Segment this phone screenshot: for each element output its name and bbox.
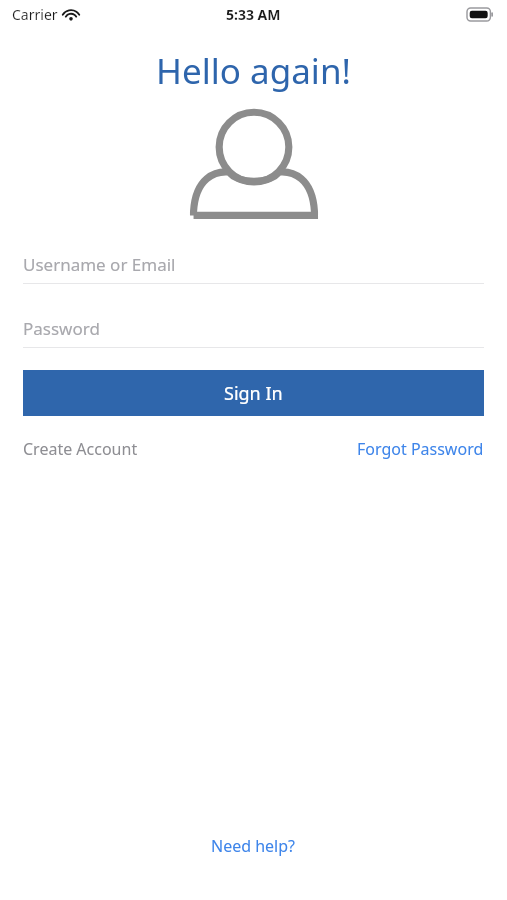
staticText: Username or Email [23, 253, 176, 276]
button[interactable]: Forgot Password [357, 438, 484, 460]
staticText: Create Account [23, 438, 138, 460]
button[interactable]: Password [23, 309, 484, 348]
staticText: Forgot Password [357, 438, 484, 460]
staticText: Sign In [224, 381, 283, 406]
button[interactable]: Need help? [211, 835, 296, 857]
button[interactable]: Sign In [23, 370, 484, 416]
button[interactable]: Create Account [23, 438, 138, 460]
staticText: Need help? [211, 835, 296, 857]
staticText: 5:33 AM [226, 5, 281, 24]
staticText: Password [23, 317, 100, 340]
staticText: Hello again! [0, 47, 507, 95]
staticText: Carrier [12, 5, 58, 24]
button[interactable]: Username or Email [23, 245, 484, 284]
